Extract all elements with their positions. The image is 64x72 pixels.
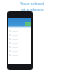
button[interactable]	[8, 49, 31, 53]
button[interactable]	[8, 29, 31, 33]
button[interactable]	[8, 41, 31, 45]
button[interactable]	[8, 45, 31, 49]
button[interactable]	[8, 33, 31, 37]
button[interactable]	[8, 37, 31, 41]
button[interactable]	[8, 53, 31, 57]
staticText: Your school	[20, 0, 44, 6]
staticText: at a glance	[21, 6, 44, 12]
